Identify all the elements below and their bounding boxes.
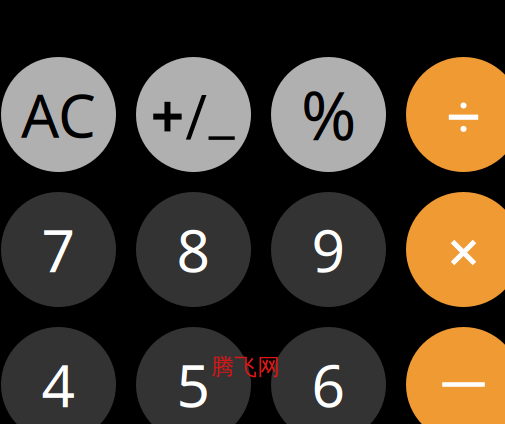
staticText: 7 bbox=[41, 210, 75, 288]
button[interactable]: Plus Minus bbox=[136, 57, 251, 172]
button[interactable]: 8 bbox=[136, 192, 251, 307]
button[interactable]: 4 bbox=[1, 327, 116, 424]
staticText: % bbox=[301, 70, 356, 159]
button[interactable]: 7 bbox=[1, 192, 116, 307]
button[interactable]: Divide bbox=[406, 57, 505, 172]
button[interactable]: Multiply bbox=[406, 192, 505, 307]
button[interactable]: % bbox=[271, 57, 386, 172]
button[interactable]: AC bbox=[1, 57, 116, 172]
staticText: 5 bbox=[176, 345, 210, 423]
staticText: 6 bbox=[311, 345, 345, 423]
button[interactable]: Minus bbox=[406, 327, 505, 424]
staticText: 4 bbox=[41, 345, 75, 423]
staticText: 腾飞网 bbox=[211, 353, 280, 381]
button[interactable]: 9 bbox=[271, 192, 386, 307]
staticText: AC bbox=[21, 75, 96, 154]
staticText: 9 bbox=[311, 210, 345, 288]
button[interactable]: 6 bbox=[271, 327, 386, 424]
staticText: 8 bbox=[176, 210, 210, 288]
button[interactable]: 5 bbox=[136, 327, 251, 424]
